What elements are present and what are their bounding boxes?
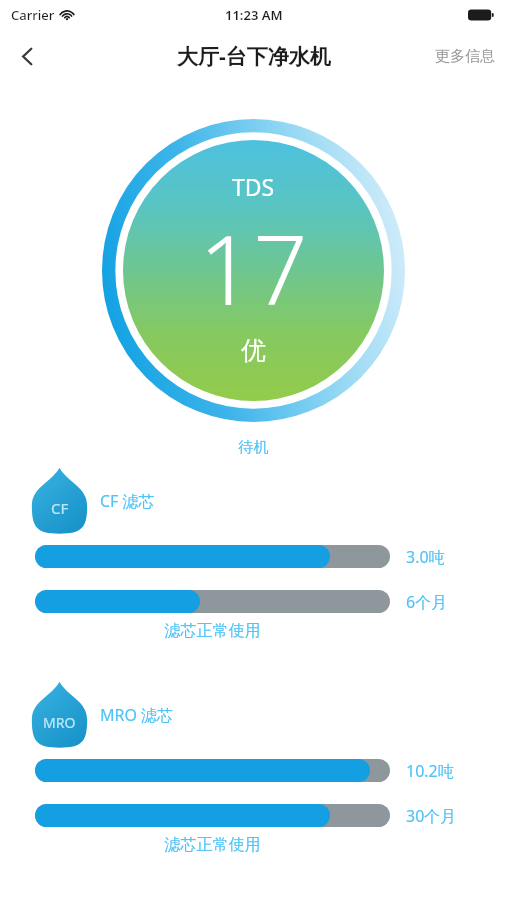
- staticText: CF: [51, 498, 69, 518]
- button[interactable]: [35, 804, 390, 827]
- staticText: TDS: [232, 171, 275, 202]
- button[interactable]: Back: [5, 34, 49, 78]
- button[interactable]: [35, 545, 390, 568]
- staticText: 11:23 AM: [225, 6, 283, 24]
- staticText: MRO: [43, 713, 76, 732]
- button[interactable]: 更多信息: [431, 39, 499, 74]
- staticText: 10.2吨: [406, 760, 454, 782]
- staticText: 滤芯正常使用: [0, 835, 425, 855]
- button[interactable]: MRO: [31, 681, 507, 749]
- button[interactable]: [35, 590, 390, 613]
- staticText: Carrier: [11, 6, 55, 24]
- staticText: 3.0吨: [406, 546, 445, 568]
- staticText: 30个月: [406, 805, 457, 827]
- staticText: 更多信息: [435, 47, 495, 66]
- button[interactable]: [35, 759, 390, 782]
- staticText: 滤芯正常使用: [0, 621, 425, 641]
- staticText: 待机: [0, 438, 507, 457]
- staticText: 6个月: [406, 591, 448, 613]
- staticText: CF 滤芯: [100, 490, 155, 512]
- staticText: 大厅-台下净水机: [177, 42, 331, 71]
- staticText: 17: [199, 203, 308, 332]
- staticText: 优: [241, 335, 266, 366]
- button[interactable]: CF: [31, 467, 507, 535]
- staticText: MRO 滤芯: [100, 704, 174, 726]
